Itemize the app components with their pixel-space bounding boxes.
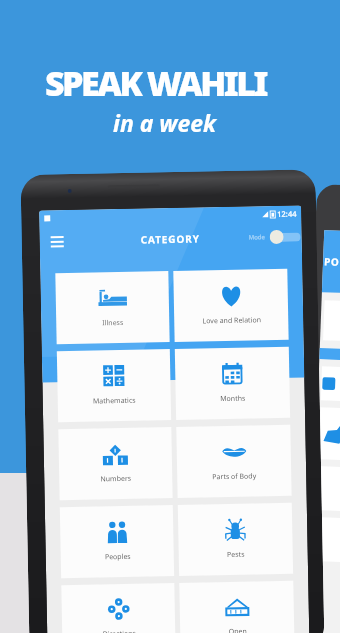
staticText: Months: [220, 394, 246, 404]
staticText: Directions: [102, 629, 136, 633]
button[interactable]: Open menu: [45, 230, 68, 252]
button[interactable]: Toggle mode: [269, 230, 296, 244]
staticText: 12:44: [277, 209, 297, 219]
staticText: in a week: [113, 107, 217, 138]
button[interactable]: Months: [175, 347, 290, 420]
staticText: PORTS: [324, 254, 340, 269]
staticText: Mathematics: [93, 396, 136, 406]
button[interactable]: Numbers: [58, 427, 173, 500]
button[interactable]: Parts of Body: [176, 425, 292, 498]
staticText: Parts of Body: [212, 471, 256, 482]
staticText: SPEAK WAHILI: [45, 60, 267, 106]
staticText: Numbers: [100, 474, 131, 484]
staticText: Open: [228, 627, 247, 633]
button[interactable]: Open: [179, 581, 295, 633]
staticText: Pests: [227, 550, 245, 560]
button[interactable]: Pests: [178, 503, 293, 576]
button[interactable]: Directions: [61, 583, 176, 633]
button[interactable]: Illness: [55, 271, 170, 344]
button[interactable]: Love and Relation: [173, 269, 289, 342]
button[interactable]: Mathematics: [57, 349, 171, 422]
staticText: Illness: [102, 318, 123, 328]
button[interactable]: Peoples: [60, 505, 174, 578]
staticText: Mode: [249, 233, 266, 241]
staticText: Love and Relation: [202, 315, 261, 326]
staticText: CATEGORY: [140, 231, 201, 246]
staticText: Peoples: [105, 552, 131, 562]
